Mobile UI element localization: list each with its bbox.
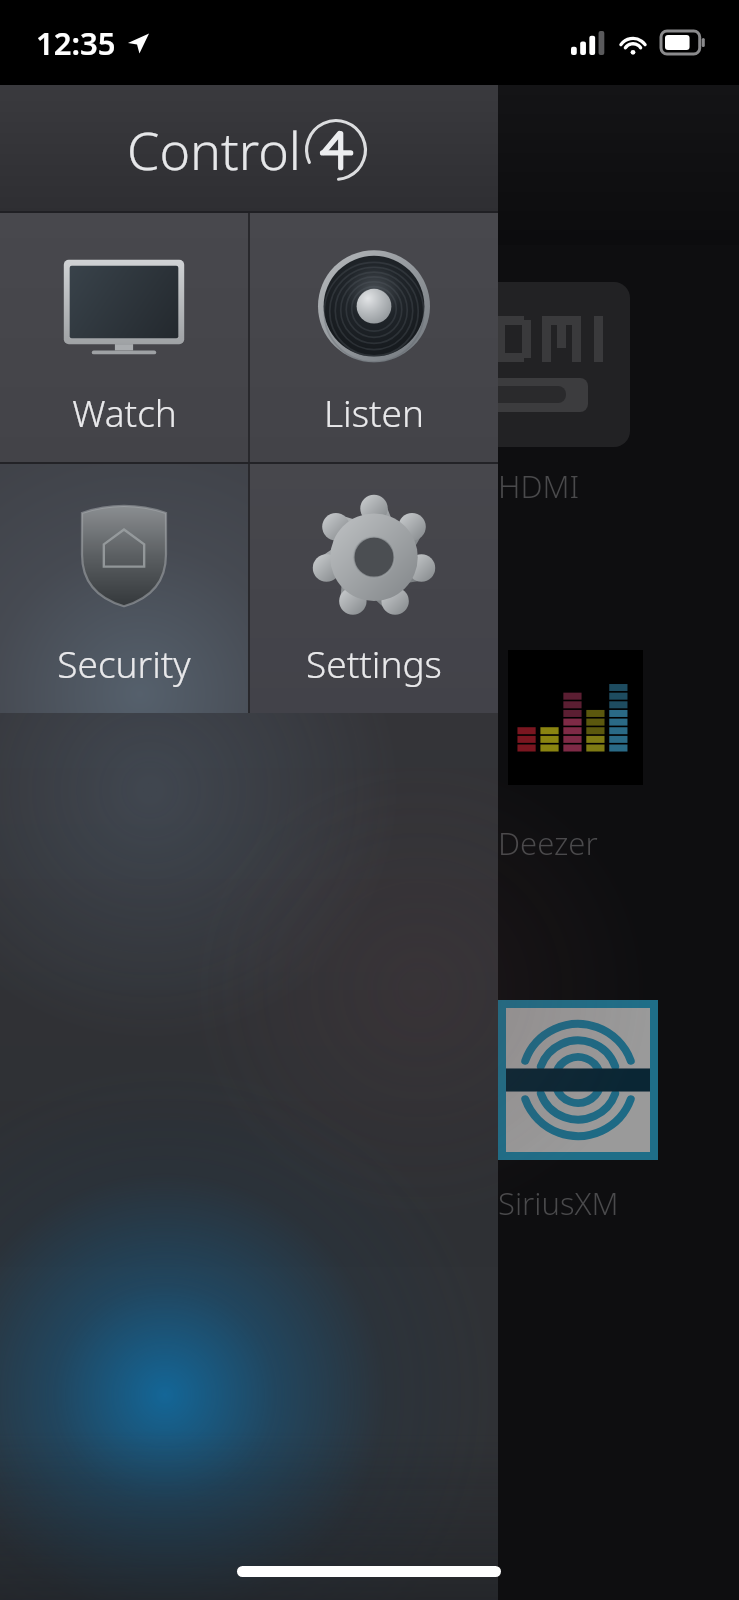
staticText: Control: [127, 114, 301, 185]
staticText: 12:35: [36, 22, 116, 64]
staticText: Watch: [72, 387, 177, 437]
button[interactable]: Control: [0, 85, 498, 213]
button[interactable]: Security: [0, 464, 248, 713]
button[interactable]: Listen: [250, 213, 498, 462]
staticText: Settings: [306, 638, 442, 688]
staticText: Listen: [324, 387, 424, 437]
button[interactable]: Watch: [0, 213, 248, 462]
staticText: Deezer: [498, 822, 598, 864]
button[interactable]: Settings: [250, 464, 498, 713]
staticText: SiriusXM: [498, 1182, 619, 1224]
staticText: Security: [57, 638, 191, 688]
staticText: HDMI: [498, 465, 580, 507]
